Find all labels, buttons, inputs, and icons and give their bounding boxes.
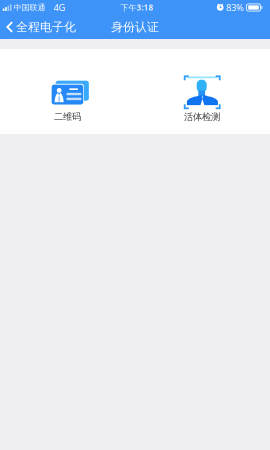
staticText: 83% [226,1,244,14]
button[interactable]: 二维码 [0,49,135,134]
button[interactable]: 活体检测 [135,49,270,134]
staticText: 全程电子化 [16,20,76,34]
staticText: 中国联通 [13,3,45,12]
button[interactable]: 全程电子化 [0,15,84,39]
staticText: 4G [53,1,65,14]
staticText: 二维码 [54,111,81,122]
staticText: 下午3:18 [120,2,153,13]
staticText: 活体检测 [184,111,220,123]
staticText: 身份认证 [111,20,159,34]
